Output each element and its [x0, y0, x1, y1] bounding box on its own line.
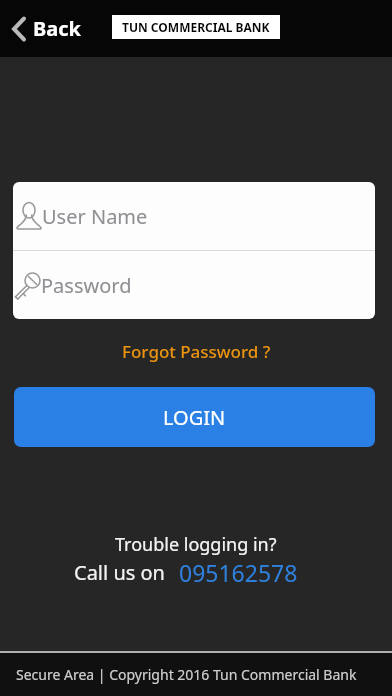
button[interactable]: Back	[0, 11, 89, 46]
button[interactable]: Forgot Password ?	[122, 340, 271, 363]
button[interactable]: LOGIN	[14, 387, 375, 447]
staticText: LOGIN	[163, 404, 226, 431]
staticText: Call us on	[74, 559, 165, 586]
staticText: Secure Area | Copyright 2016 Tun Commerc…	[16, 665, 357, 684]
button[interactable]: 095162578	[179, 557, 298, 588]
staticText: Back	[33, 15, 81, 42]
staticText: User Name	[42, 203, 148, 230]
staticText: TUN COMMERCIAL BANK	[122, 19, 270, 35]
staticText: Password	[41, 272, 132, 299]
button[interactable]: User Name	[13, 182, 375, 250]
button[interactable]: Password	[13, 251, 375, 319]
staticText: Trouble logging in?	[115, 532, 277, 557]
button[interactable]: TUN COMMERCIAL BANK	[112, 15, 280, 39]
